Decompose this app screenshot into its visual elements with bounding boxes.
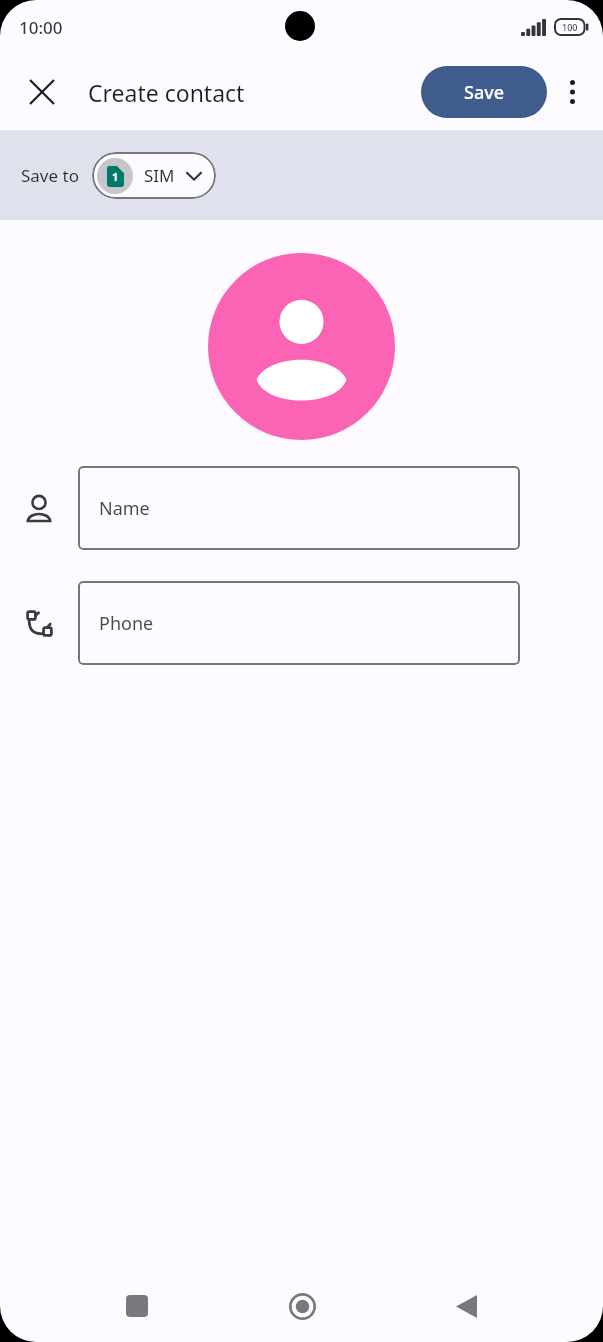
button[interactable]: 1: [92, 152, 216, 199]
staticText: 100: [562, 21, 578, 33]
staticText: 10:00: [19, 16, 63, 39]
staticText: SIM: [144, 164, 175, 187]
button[interactable]: Close: [19, 69, 65, 115]
button[interactable]: Name: [78, 466, 520, 550]
button[interactable]: Add contact photo: [208, 253, 395, 440]
button[interactable]: Back: [438, 1278, 494, 1334]
button[interactable]: Phone: [78, 581, 520, 665]
staticText: Name: [99, 496, 150, 521]
button[interactable]: Recent apps: [109, 1278, 165, 1334]
button[interactable]: More options: [549, 69, 595, 115]
button[interactable]: Save: [421, 66, 547, 118]
staticText: Phone: [99, 611, 154, 636]
staticText: Create contact: [88, 77, 245, 108]
staticText: Save: [464, 80, 505, 105]
staticText: Save to: [21, 164, 79, 187]
staticText: 1: [112, 169, 119, 184]
button[interactable]: Home: [274, 1278, 330, 1334]
